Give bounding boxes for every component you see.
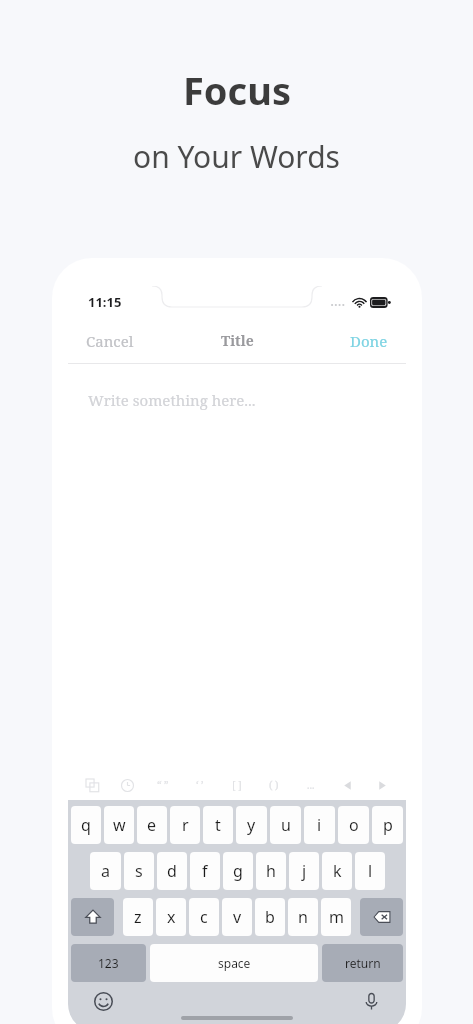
button[interactable]: q bbox=[71, 806, 101, 844]
staticText: k bbox=[333, 860, 342, 882]
button[interactable]: return bbox=[322, 944, 403, 982]
button[interactable]: l bbox=[355, 852, 385, 890]
staticText: ( ) bbox=[269, 778, 279, 792]
staticText: n bbox=[298, 906, 308, 928]
button[interactable]: Single quotes bbox=[189, 775, 211, 795]
staticText: q bbox=[81, 814, 91, 836]
staticText: b bbox=[265, 906, 275, 928]
button[interactable]: e bbox=[137, 806, 167, 844]
button[interactable]: k bbox=[322, 852, 352, 890]
button[interactable]: b bbox=[255, 898, 285, 936]
staticText: d bbox=[167, 860, 177, 882]
staticText: 123 bbox=[98, 955, 119, 971]
button[interactable]: Paste bbox=[82, 775, 102, 795]
button[interactable]: Ellipsis bbox=[300, 775, 322, 795]
button[interactable]: c bbox=[189, 898, 219, 936]
button[interactable]: Brackets bbox=[226, 775, 248, 795]
staticText: l bbox=[368, 860, 373, 882]
button[interactable]: Parentheses bbox=[263, 775, 285, 795]
button[interactable]: Shift bbox=[71, 898, 114, 936]
button[interactable]: h bbox=[256, 852, 286, 890]
staticText: r bbox=[182, 814, 189, 836]
staticText: t bbox=[215, 814, 221, 836]
staticText: Write something here... bbox=[88, 390, 256, 410]
button[interactable]: w bbox=[104, 806, 134, 844]
staticText: j bbox=[302, 860, 307, 882]
button[interactable]: u bbox=[270, 806, 301, 844]
button[interactable]: d bbox=[157, 852, 187, 890]
button[interactable]: i bbox=[304, 806, 335, 844]
staticText: a bbox=[101, 860, 110, 882]
staticText: p bbox=[383, 814, 393, 836]
button[interactable]: 123 bbox=[71, 944, 146, 982]
staticText: ... bbox=[307, 778, 315, 792]
staticText: e bbox=[147, 814, 157, 836]
staticText: Title bbox=[221, 331, 254, 350]
button[interactable]: Emoji bbox=[90, 988, 116, 1014]
staticText: Cancel bbox=[86, 331, 134, 351]
button[interactable]: n bbox=[288, 898, 318, 936]
staticText: y bbox=[247, 814, 256, 836]
staticText: h bbox=[266, 860, 276, 882]
button[interactable]: j bbox=[289, 852, 319, 890]
staticText: v bbox=[233, 906, 242, 928]
staticText: space bbox=[218, 955, 251, 971]
staticText: s bbox=[135, 860, 143, 882]
staticText: return bbox=[345, 955, 381, 971]
button[interactable]: Previous bbox=[337, 775, 357, 795]
button[interactable]: g bbox=[223, 852, 253, 890]
staticText: z bbox=[134, 906, 142, 928]
button[interactable]: r bbox=[170, 806, 200, 844]
staticText: i bbox=[317, 814, 322, 836]
staticText: 11:15 bbox=[88, 293, 122, 311]
button[interactable]: z bbox=[123, 898, 153, 936]
staticText: ‘ ’ bbox=[196, 778, 204, 792]
button[interactable]: y bbox=[236, 806, 267, 844]
staticText: u bbox=[281, 814, 291, 836]
staticText: Focus bbox=[183, 64, 291, 116]
button[interactable]: Next bbox=[372, 775, 392, 795]
button[interactable]: v bbox=[222, 898, 252, 936]
button[interactable]: t bbox=[203, 806, 233, 844]
button[interactable]: Quotes bbox=[152, 775, 174, 795]
button[interactable]: space bbox=[150, 944, 318, 982]
staticText: g bbox=[233, 860, 243, 882]
button[interactable]: o bbox=[338, 806, 369, 844]
button[interactable]: f bbox=[190, 852, 220, 890]
staticText: “ ” bbox=[157, 778, 169, 792]
staticText: o bbox=[349, 814, 359, 836]
button[interactable]: Done bbox=[332, 323, 406, 359]
staticText: x bbox=[167, 906, 176, 928]
button[interactable]: Dictate bbox=[358, 988, 384, 1014]
staticText: f bbox=[202, 860, 208, 882]
staticText: w bbox=[113, 814, 126, 836]
button[interactable]: Recent bbox=[117, 775, 137, 795]
button[interactable]: p bbox=[372, 806, 403, 844]
staticText: m bbox=[329, 906, 344, 928]
button[interactable]: Cancel bbox=[68, 323, 152, 359]
button[interactable]: a bbox=[90, 852, 121, 890]
staticText: Done bbox=[350, 331, 388, 351]
button[interactable]: x bbox=[156, 898, 186, 936]
staticText: [ ] bbox=[232, 778, 242, 792]
button[interactable]: m bbox=[321, 898, 351, 936]
staticText: on Your Words bbox=[133, 136, 340, 177]
button[interactable]: Backspace bbox=[360, 898, 403, 936]
button[interactable]: s bbox=[124, 852, 154, 890]
staticText: c bbox=[200, 906, 208, 928]
